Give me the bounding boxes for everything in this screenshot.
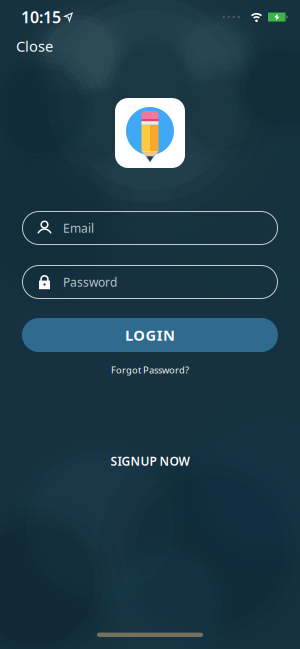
button[interactable]: Close [16, 38, 53, 54]
staticText: LOGIN [125, 325, 175, 345]
button[interactable]: Forgot Password? [103, 363, 197, 377]
staticText: 10:15 [21, 6, 61, 28]
staticText: Forgot Password? [111, 364, 189, 376]
button[interactable]: Password [22, 265, 278, 299]
staticText: Close [16, 36, 53, 56]
staticText: Email [63, 220, 94, 236]
button[interactable]: Email [22, 211, 278, 245]
button[interactable]: LOGIN [22, 318, 278, 352]
staticText: Password [63, 274, 117, 290]
staticText: SIGNUP NOW [110, 453, 189, 469]
button[interactable]: SIGNUP NOW [85, 453, 215, 469]
